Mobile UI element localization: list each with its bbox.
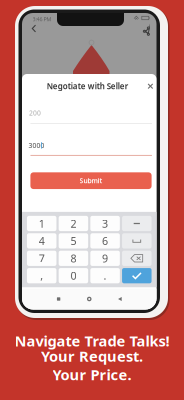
button[interactable]: 7 <box>27 251 56 266</box>
staticText: Your Price. <box>52 365 131 384</box>
button[interactable]: Home <box>81 291 97 307</box>
staticText: Submit <box>79 176 102 185</box>
button[interactable]: . <box>90 268 120 283</box>
staticText: Your Request. <box>41 346 143 366</box>
staticText: . <box>104 269 107 283</box>
staticText: 0 <box>70 269 76 283</box>
button[interactable]: Delete <box>122 251 151 266</box>
staticText: 1 <box>39 216 45 231</box>
staticText: 4 <box>39 234 45 248</box>
button[interactable]: 6 <box>90 233 120 248</box>
button[interactable]: 4 <box>27 233 56 248</box>
staticText: 9 <box>102 251 108 265</box>
button[interactable]: 3 <box>90 216 120 231</box>
button[interactable]: Share <box>138 23 154 39</box>
button[interactable]: 9 <box>90 251 120 266</box>
button[interactable]: Space <box>122 233 151 248</box>
button[interactable]: Recents <box>51 291 67 307</box>
button[interactable]: 8 <box>59 251 88 266</box>
staticText: 6 <box>102 234 108 248</box>
staticText: 200 <box>29 108 41 117</box>
button[interactable]: 5 <box>59 233 88 248</box>
staticText: Navigate Trade Talks! <box>14 331 169 350</box>
button[interactable]: Submit <box>30 172 152 189</box>
staticText: Negotiate with Seller <box>47 81 128 91</box>
button[interactable]: Back <box>112 291 128 307</box>
button[interactable]: Confirm <box>122 268 151 283</box>
button[interactable]: Minus <box>122 216 151 231</box>
staticText: 5 <box>70 234 76 248</box>
button[interactable]: Back <box>26 20 42 36</box>
staticText: 2 <box>70 216 76 231</box>
staticText: 7 <box>39 251 45 265</box>
staticText: , <box>40 269 43 283</box>
staticText: 3 <box>102 216 108 231</box>
staticText: 8 <box>70 251 76 265</box>
staticText: 3:46 PM <box>32 16 51 23</box>
button[interactable]: 0 <box>59 268 88 283</box>
button[interactable]: Close <box>144 80 157 93</box>
staticText: 3000 <box>28 141 44 150</box>
button[interactable]: 2 <box>59 216 88 231</box>
button[interactable]: , <box>27 268 56 283</box>
button[interactable]: 1 <box>27 216 56 231</box>
